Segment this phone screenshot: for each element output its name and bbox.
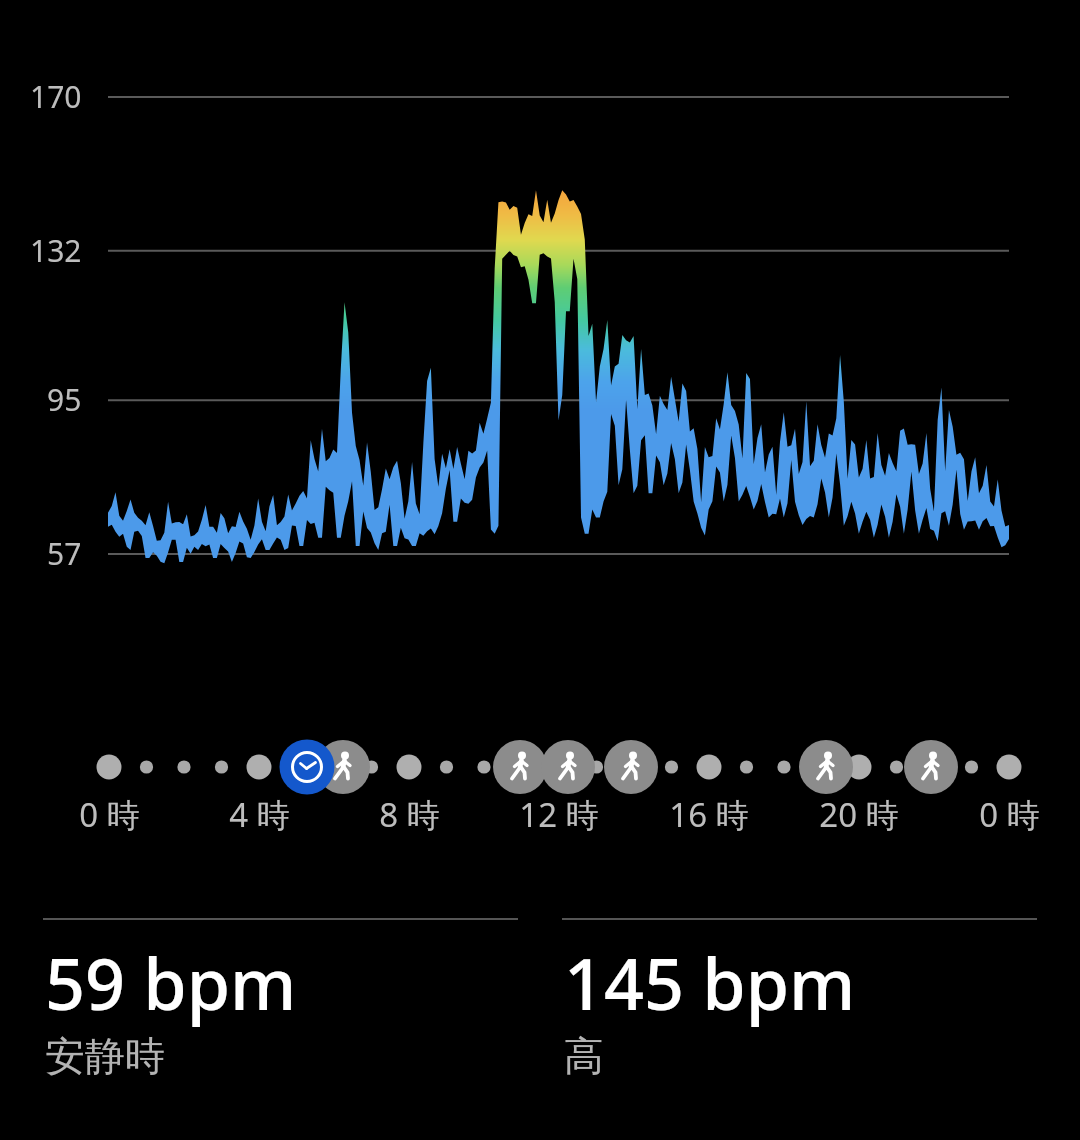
staticText: 高: [564, 1031, 604, 1081]
staticText: 132: [30, 230, 82, 271]
button[interactable]: Walk noon: [540, 739, 596, 795]
staticText: 59 bpm: [45, 935, 297, 1030]
button[interactable]: Walk 7 PM: [798, 739, 854, 795]
staticText: 20 時: [819, 792, 899, 837]
staticText: 0 時: [79, 792, 140, 837]
staticText: 0 時: [979, 792, 1040, 837]
staticText: 12 時: [519, 792, 599, 837]
staticText: 145 bpm: [564, 935, 856, 1030]
button[interactable]: 59 bpm: [45, 935, 505, 1081]
button[interactable]: Sleep period: [279, 739, 335, 795]
staticText: 170: [30, 76, 82, 117]
button[interactable]: 145 bpm: [564, 935, 1024, 1081]
staticText: 安静時: [45, 1031, 165, 1081]
button[interactable]: Walk 10 PM: [903, 739, 959, 795]
button[interactable]: Walk 11 AM: [492, 739, 548, 795]
staticText: 16 時: [669, 792, 749, 837]
button[interactable]: Walk 2 PM: [603, 739, 659, 795]
staticText: 57: [47, 533, 82, 574]
staticText: 95: [47, 379, 82, 420]
staticText: 8 時: [379, 792, 440, 837]
staticText: 4 時: [229, 792, 290, 837]
button[interactable]: Walk 4 AM: [315, 739, 371, 795]
